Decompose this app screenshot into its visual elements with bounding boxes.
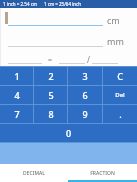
staticText: 8: [48, 108, 54, 120]
staticText: 2: [48, 70, 54, 82]
staticText: 1 cm = 25/64 inch: [44, 1, 82, 7]
staticText: 0: [66, 127, 72, 139]
staticText: C: [117, 70, 123, 82]
staticText: FRACTION: [90, 170, 115, 177]
staticText: 3: [82, 70, 88, 82]
staticText: 5: [48, 89, 54, 101]
staticText: 1 inch = 2.54 cm: [3, 1, 38, 7]
button[interactable]: 9: [68, 105, 102, 123]
staticText: Del: [115, 91, 125, 99]
button[interactable]: cm: [0, 11, 137, 28]
staticText: 6: [82, 89, 88, 101]
staticText: 1: [14, 70, 20, 82]
staticText: =: [48, 55, 53, 65]
button[interactable]: 1: [0, 67, 33, 85]
button[interactable]: DECIMAL: [0, 164, 68, 182]
staticText: .: [119, 108, 122, 120]
button[interactable]: 7: [0, 105, 33, 123]
button[interactable]: [8, 53, 42, 66]
staticText: cm: [107, 14, 120, 26]
staticText: mm: [107, 35, 124, 47]
button[interactable]: 2: [34, 67, 67, 85]
button[interactable]: 8: [34, 105, 67, 123]
staticText: 9: [82, 108, 88, 120]
button[interactable]: mm: [0, 32, 137, 49]
staticText: DECIMAL: [23, 170, 45, 177]
button[interactable]: 5: [34, 86, 67, 104]
button[interactable]: C: [103, 67, 137, 85]
button[interactable]: 6: [68, 86, 102, 104]
button[interactable]: 3: [68, 67, 102, 85]
staticText: 7: [14, 108, 20, 120]
button[interactable]: FRACTION: [68, 164, 137, 182]
staticText: /: [87, 54, 90, 65]
button[interactable]: [92, 53, 118, 66]
button[interactable]: [59, 53, 85, 66]
button[interactable]: 4: [0, 86, 33, 104]
staticText: 4: [14, 89, 20, 101]
button[interactable]: Decimal point: [103, 105, 137, 123]
button[interactable]: 0: [0, 124, 137, 142]
button[interactable]: Del: [103, 86, 137, 104]
